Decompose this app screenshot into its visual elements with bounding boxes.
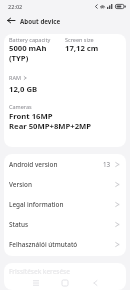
staticText: (TYP): [9, 53, 29, 63]
button[interactable]: Back: [87, 277, 103, 289]
staticText: Cameras: [9, 103, 32, 110]
button[interactable]: Recents: [28, 277, 44, 289]
button[interactable]: Home: [57, 277, 73, 289]
staticText: Android version: [9, 160, 103, 169]
button[interactable]: Legal information: [4, 194, 126, 214]
staticText: About device: [20, 17, 61, 25]
staticText: Rear 50MP+8MP+2MP: [9, 121, 92, 131]
staticText: Version: [9, 180, 115, 189]
staticText: Battery capacity: [9, 36, 51, 43]
button[interactable]: Back: [4, 14, 17, 27]
staticText: Legal information: [9, 200, 115, 209]
button[interactable]: Android version: [4, 154, 126, 174]
staticText: Status: [9, 220, 115, 229]
button[interactable]: Felhasználói útmutató: [4, 234, 126, 254]
staticText: RAM: [9, 74, 21, 81]
button[interactable]: Version: [4, 174, 126, 194]
staticText: 13: [103, 160, 111, 169]
staticText: Frissítések keresése: [9, 267, 70, 276]
staticText: 22:02: [8, 3, 23, 11]
staticText: 5000 mAh: [9, 43, 47, 53]
staticText: 12,0 GB: [9, 84, 38, 94]
staticText: Front 16MP: [9, 111, 53, 121]
staticText: Screen size: [65, 36, 94, 43]
staticText: 17,12 cm: [65, 43, 99, 53]
staticText: Felhasználói útmutató: [9, 240, 115, 249]
button[interactable]: Status: [4, 214, 126, 234]
